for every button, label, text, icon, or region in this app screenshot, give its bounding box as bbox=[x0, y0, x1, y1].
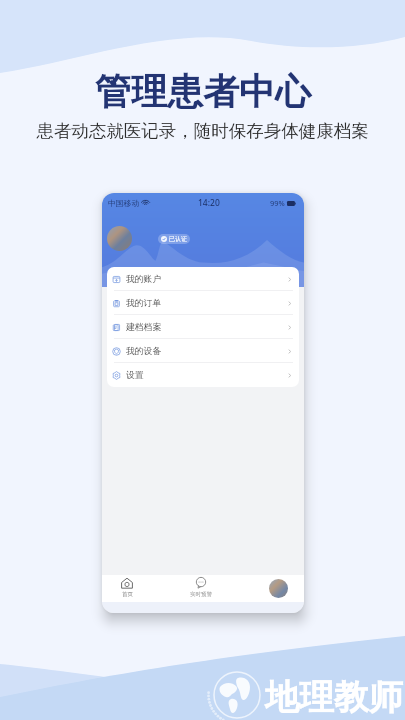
staticText: 中国移动 bbox=[108, 198, 140, 208]
button[interactable]: 设置 bbox=[107, 363, 299, 387]
staticText: 患者动态就医记录，随时保存身体健康档案 bbox=[36, 120, 369, 142]
staticText: 已认证 bbox=[169, 235, 187, 243]
staticText: 建档档案 bbox=[126, 322, 162, 333]
staticText: 首页 bbox=[122, 591, 133, 598]
button[interactable]: 我的设备 bbox=[107, 339, 299, 363]
staticText: 我的账户 bbox=[126, 274, 162, 285]
staticText: 99% bbox=[270, 198, 285, 208]
button[interactable]: 实时预警 bbox=[187, 577, 215, 598]
button[interactable]: 我的账户 bbox=[107, 267, 299, 291]
button[interactable]: 我的订单 bbox=[107, 291, 299, 315]
staticText: 地理教师 bbox=[265, 676, 403, 719]
staticText: 我的设备 bbox=[126, 346, 162, 357]
staticText: 管理患者中心 bbox=[95, 69, 311, 114]
button[interactable]: 建档档案 bbox=[107, 315, 299, 339]
button[interactable]: Profile bbox=[269, 579, 288, 598]
staticText: 设置 bbox=[126, 370, 144, 381]
staticText: 14:20 bbox=[198, 197, 220, 209]
staticText: 我的订单 bbox=[126, 298, 162, 309]
button[interactable]: 首页 bbox=[114, 577, 140, 598]
staticText: 实时预警 bbox=[190, 591, 212, 598]
